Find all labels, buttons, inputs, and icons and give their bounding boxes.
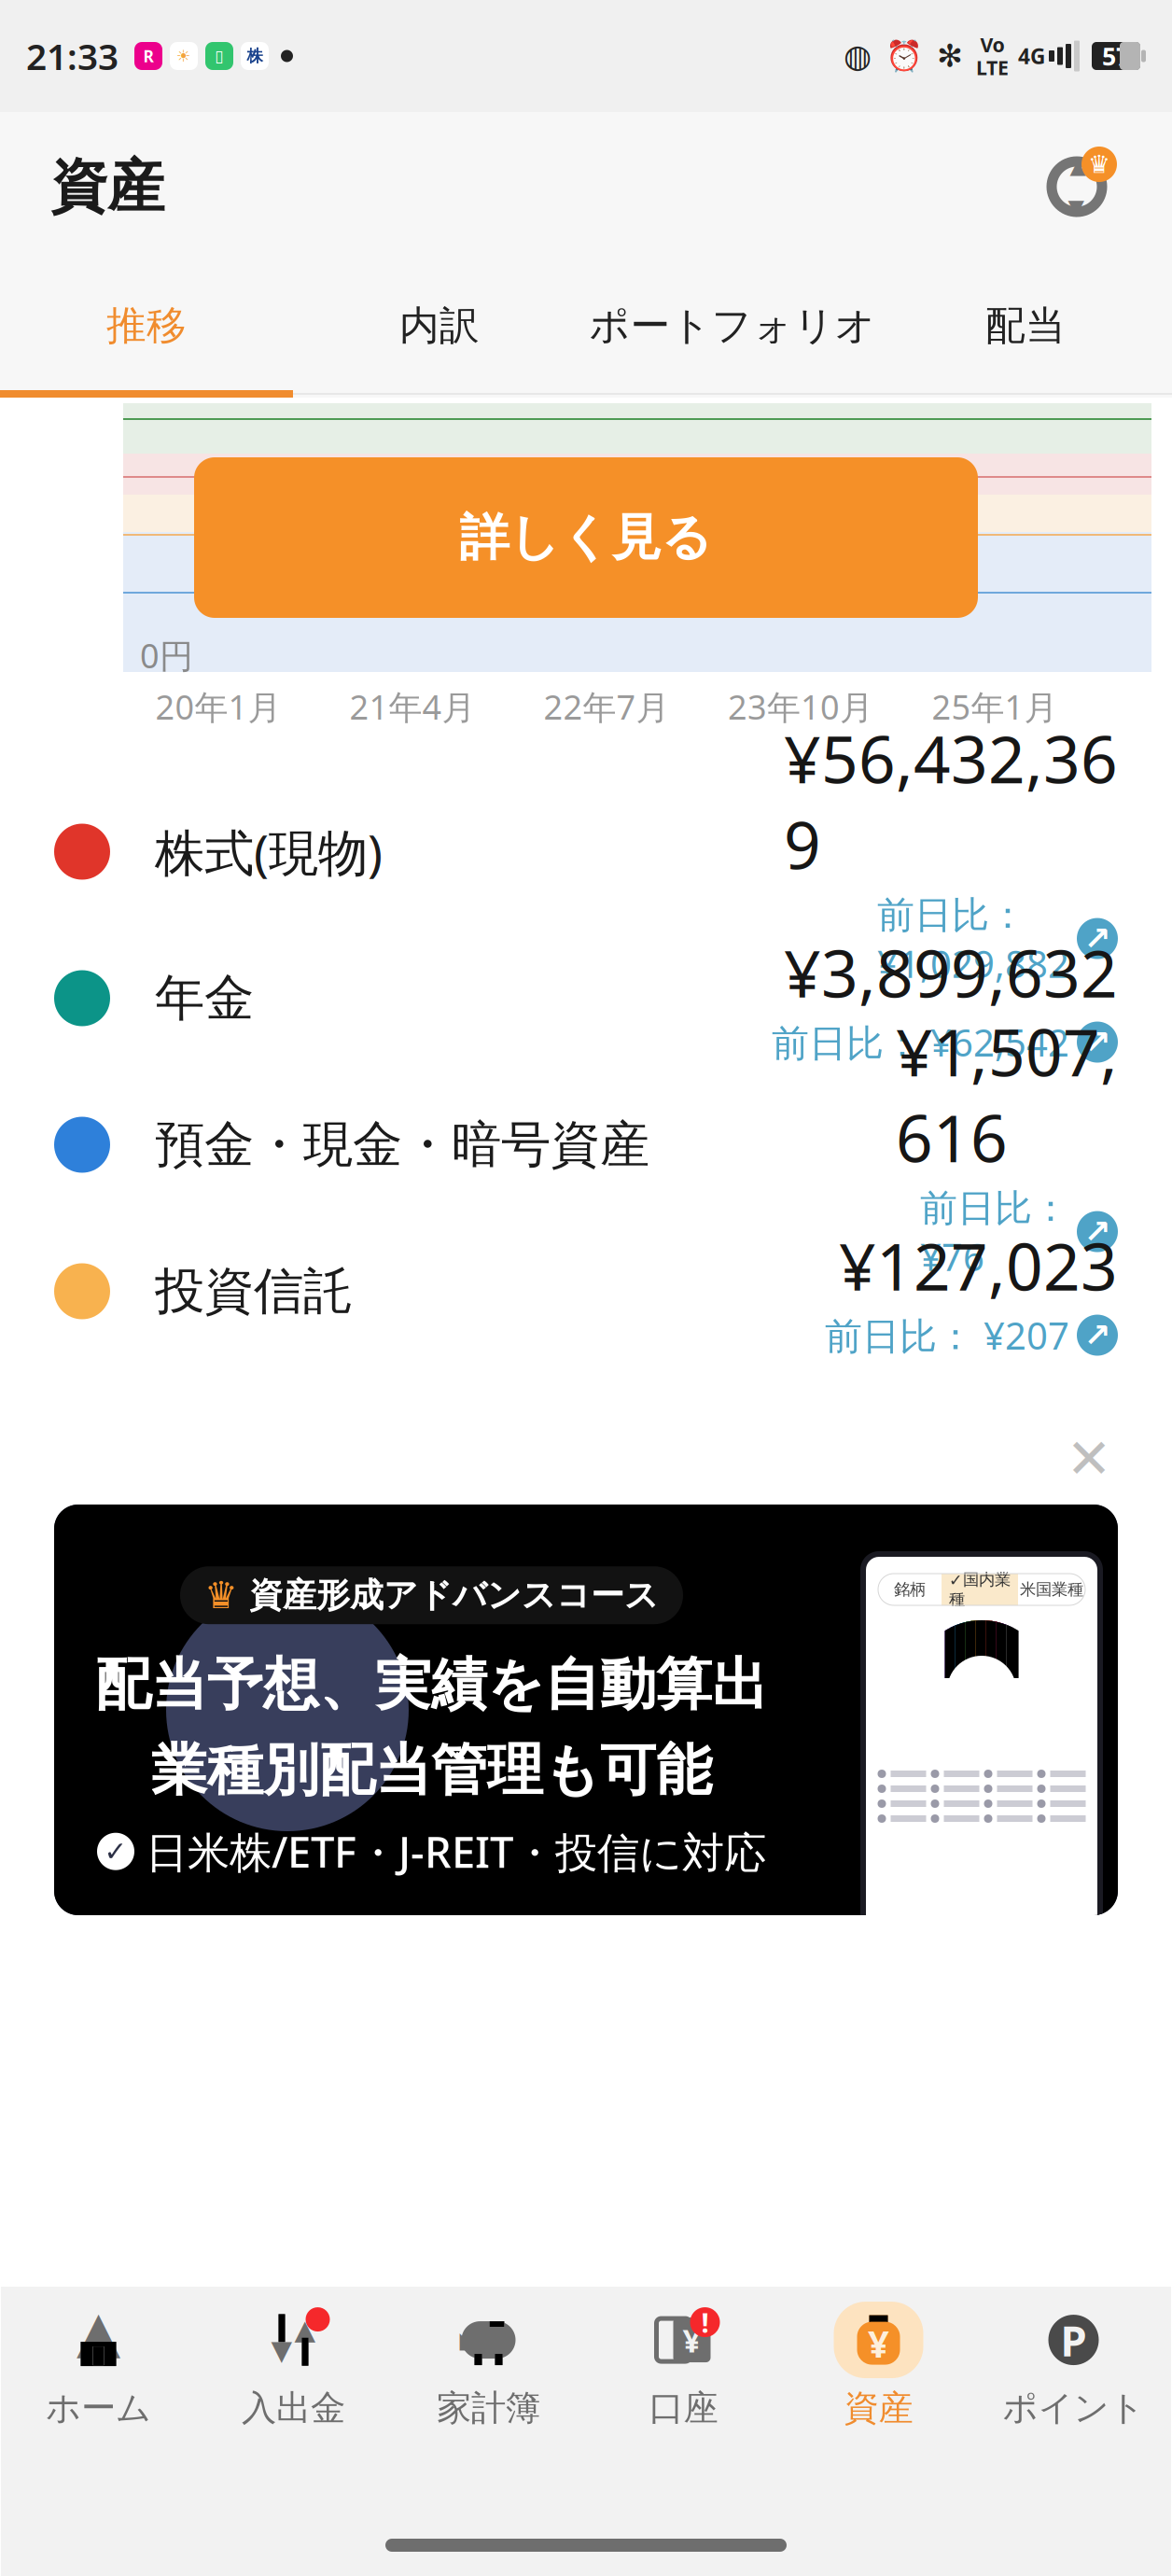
- staticText: 配当予想、実績を自動算出: [95, 1650, 768, 1719]
- staticText: 内訳: [399, 301, 480, 350]
- staticText: ¥127,023: [839, 1223, 1118, 1309]
- staticText: 前日比： ¥207: [825, 1310, 1069, 1360]
- staticText: ✓国内業種: [949, 1570, 1011, 1609]
- staticText: ♛: [204, 1574, 238, 1616]
- staticText: 銘柄: [894, 1580, 926, 1599]
- button[interactable]: ▼: [196, 2290, 391, 2440]
- staticText: 0円: [140, 633, 193, 678]
- staticText: ◣: [460, 2327, 476, 2353]
- staticText: !: [701, 2304, 709, 2340]
- button[interactable]: ◣: [391, 2290, 586, 2440]
- button[interactable]: 内訳: [293, 261, 586, 390]
- staticText: 配当: [985, 301, 1066, 350]
- staticText: 21年4月: [349, 684, 475, 729]
- staticText: ¥: [868, 2318, 889, 2368]
- staticText: P: [1060, 2312, 1087, 2368]
- staticText: 23年10月: [728, 684, 873, 729]
- staticText: ▼: [1068, 195, 1084, 219]
- button[interactable]: ▲: [1, 2290, 196, 2440]
- staticText: 日米株/ETF・J-REIT・投信に対応: [146, 1823, 766, 1880]
- staticText: ⏰: [886, 39, 923, 73]
- staticText: ✻: [937, 38, 963, 74]
- staticText: 口座: [649, 2387, 718, 2429]
- button[interactable]: 投資信託: [0, 1218, 1172, 1365]
- staticText: 投資信託: [155, 1261, 353, 1322]
- staticText: ▲: [77, 2299, 120, 2364]
- staticText: ¥: [683, 2318, 701, 2361]
- staticText: 預金・現金・暗号資産: [155, 1114, 649, 1175]
- staticText: R: [143, 45, 153, 67]
- staticText: 入出金: [242, 2387, 345, 2429]
- button[interactable]: ポートフォリオ: [586, 261, 879, 390]
- button[interactable]: P: [976, 2290, 1171, 2440]
- button[interactable]: 閉じる: [1049, 1419, 1129, 1499]
- staticText: 詳しく見る: [460, 507, 712, 568]
- button[interactable]: 配当: [879, 261, 1172, 390]
- staticText: 株式(現物): [155, 819, 383, 885]
- staticText: 20年1月: [155, 684, 281, 729]
- staticText: Vo: [980, 31, 1005, 58]
- staticText: 資産: [844, 2387, 913, 2429]
- staticText: ↗: [1084, 1024, 1111, 1060]
- staticText: ↗: [1084, 920, 1111, 957]
- staticText: ▯: [215, 47, 224, 65]
- staticText: ♛: [1088, 150, 1110, 178]
- staticText: LTE: [976, 54, 1009, 81]
- staticText: ▲: [294, 2314, 316, 2345]
- staticText: ¥56,432,369: [784, 715, 1118, 887]
- button[interactable]: 株式(現物): [0, 778, 1172, 925]
- staticText: 57: [1102, 39, 1130, 73]
- staticText: 25年1月: [932, 684, 1058, 729]
- staticText: ¥3,899,632: [784, 930, 1118, 1015]
- staticText: ホーム: [46, 2387, 151, 2429]
- staticText: ポートフォリオ: [589, 301, 876, 350]
- button[interactable]: ♛: [0, 1505, 1172, 1915]
- staticText: 資産: [50, 151, 164, 222]
- staticText: 前日比： ¥76: [920, 1182, 1069, 1281]
- button[interactable]: ¥: [586, 2290, 781, 2440]
- staticText: 推移: [106, 301, 187, 350]
- button[interactable]: 更新: [1032, 142, 1122, 231]
- staticText: 前日比： ¥62,542: [772, 1017, 1069, 1067]
- staticText: ¥1,507,616: [896, 1008, 1118, 1180]
- staticText: 株: [247, 46, 263, 66]
- staticText: 家計簿: [437, 2387, 540, 2429]
- button[interactable]: 年金: [0, 925, 1172, 1071]
- staticText: ▼: [271, 2335, 293, 2366]
- staticText: ↗: [1084, 1317, 1111, 1354]
- staticText: 資産形成アドバンスコース: [249, 1575, 659, 1616]
- staticText: 前日比： ¥1,029,882: [877, 889, 1069, 988]
- staticText: ☀: [176, 47, 191, 65]
- staticText: 米国業種: [1020, 1580, 1083, 1599]
- staticText: ポイント: [1003, 2387, 1144, 2429]
- staticText: 21:33: [26, 32, 119, 80]
- staticText: ✕: [1066, 1428, 1112, 1490]
- staticText: ◍: [844, 38, 872, 74]
- button[interactable]: 推移: [0, 261, 293, 390]
- staticText: ↗: [1084, 1213, 1111, 1250]
- button[interactable]: ¥: [781, 2290, 976, 2440]
- staticText: 年金: [155, 968, 254, 1029]
- staticText: 業種別配当管理も可能: [151, 1736, 712, 1805]
- staticText: 22年7月: [544, 684, 670, 729]
- staticText: ✓: [104, 1836, 127, 1867]
- button[interactable]: 預金・現金・暗号資産: [0, 1071, 1172, 1218]
- staticText: ▲: [1070, 154, 1086, 178]
- button[interactable]: 詳しく見る: [194, 457, 978, 618]
- staticText: 4G: [1018, 42, 1045, 70]
